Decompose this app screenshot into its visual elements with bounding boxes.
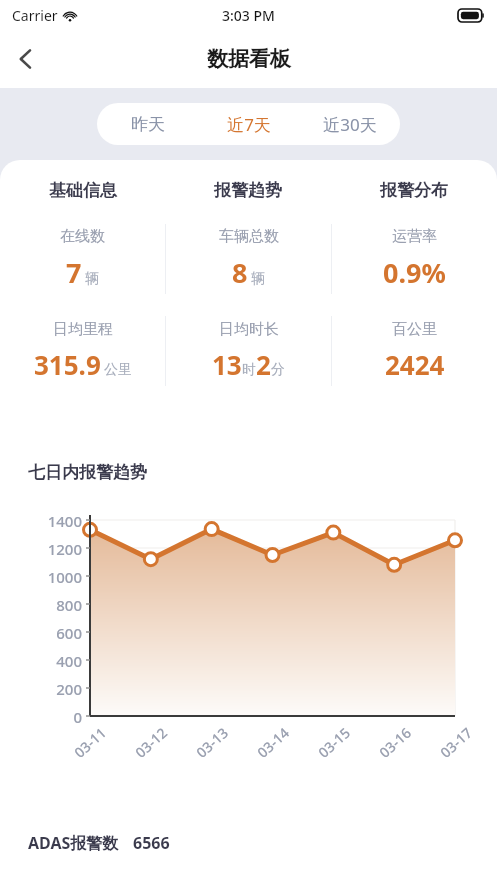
button[interactable]: 车辆总数 bbox=[166, 227, 331, 291]
button[interactable]: 近7天 bbox=[198, 103, 299, 145]
button[interactable]: 日均里程 bbox=[0, 320, 165, 382]
staticText: 1400 bbox=[22, 511, 82, 531]
staticText: 基础信息 bbox=[49, 180, 117, 201]
staticText: 7 bbox=[66, 254, 82, 291]
staticText: 600 bbox=[22, 623, 82, 643]
button[interactable]: 昨天 bbox=[97, 103, 198, 145]
staticText: 2 bbox=[256, 347, 271, 382]
button[interactable]: Back bbox=[0, 33, 52, 85]
staticText: 日均里程 bbox=[53, 320, 113, 339]
button[interactable]: 运营率 bbox=[332, 227, 497, 291]
staticText: 3:03 PM bbox=[222, 6, 275, 25]
button[interactable]: 近30天 bbox=[299, 103, 400, 145]
staticText: 辆 bbox=[251, 270, 265, 288]
staticText: Carrier bbox=[12, 6, 58, 25]
staticText: 03-12 bbox=[124, 717, 178, 768]
staticText: 03-14 bbox=[246, 717, 300, 768]
staticText: 200 bbox=[22, 679, 82, 699]
staticText: 公里 bbox=[104, 361, 132, 379]
staticText: 0.9% bbox=[383, 254, 446, 291]
staticText: 03-17 bbox=[429, 717, 483, 768]
staticText: 1000 bbox=[22, 567, 82, 587]
button[interactable]: 在线数 bbox=[0, 227, 165, 291]
staticText: 日均时长 bbox=[219, 320, 279, 339]
staticText: 昨天 bbox=[131, 114, 165, 135]
button[interactable]: 基础信息 bbox=[0, 180, 165, 201]
staticText: 近30天 bbox=[323, 113, 377, 136]
button[interactable]: 报警分布 bbox=[331, 180, 497, 201]
staticText: 2424 bbox=[385, 347, 445, 382]
staticText: 车辆总数 bbox=[219, 227, 279, 246]
button[interactable]: 百公里 bbox=[332, 320, 497, 382]
staticText: 分 bbox=[271, 361, 285, 379]
staticText: 在线数 bbox=[60, 227, 105, 246]
button[interactable]: 日均时长 bbox=[166, 320, 331, 382]
staticText: 数据看板 bbox=[207, 46, 291, 72]
staticText: 8 bbox=[232, 254, 248, 291]
staticText: 315.9 bbox=[34, 347, 101, 382]
staticText: 七日内报警趋势 bbox=[28, 462, 147, 483]
staticText: ADAS报警数 bbox=[28, 832, 119, 854]
staticText: 03-13 bbox=[185, 717, 239, 768]
staticText: 1200 bbox=[22, 539, 82, 559]
staticText: 0 bbox=[22, 707, 82, 727]
staticText: 03-11 bbox=[63, 717, 117, 768]
staticText: 03-16 bbox=[368, 717, 422, 768]
staticText: 辆 bbox=[85, 270, 99, 288]
staticText: 运营率 bbox=[392, 227, 437, 246]
staticText: 报警分布 bbox=[380, 180, 448, 201]
button[interactable]: 报警趋势 bbox=[165, 180, 331, 201]
staticText: 03-15 bbox=[307, 717, 361, 768]
staticText: 近7天 bbox=[227, 113, 271, 136]
staticText: 6566 bbox=[133, 832, 170, 854]
staticText: 时 bbox=[242, 361, 256, 379]
staticText: 报警趋势 bbox=[214, 180, 282, 201]
staticText: 13 bbox=[212, 347, 242, 382]
staticText: 800 bbox=[22, 595, 82, 615]
staticText: 400 bbox=[22, 651, 82, 671]
staticText: 百公里 bbox=[392, 320, 437, 339]
